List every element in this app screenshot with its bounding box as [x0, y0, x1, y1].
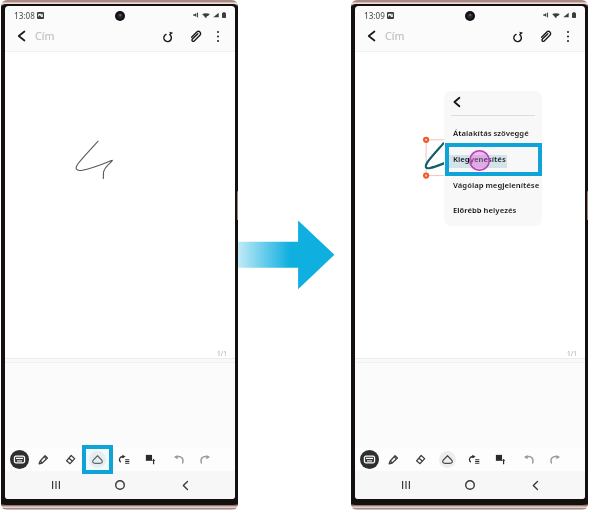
- button[interactable]: More options: [207, 24, 229, 48]
- button[interactable]: Back: [10, 24, 32, 48]
- button[interactable]: Back: [448, 93, 466, 111]
- button[interactable]: History: [157, 24, 179, 48]
- button[interactable]: Eraser: [409, 448, 431, 470]
- button[interactable]: Pen: [382, 448, 404, 470]
- button[interactable]: Selection: [436, 448, 458, 470]
- button[interactable]: Recents: [43, 471, 69, 499]
- button[interactable]: Attach: [184, 24, 206, 48]
- button[interactable]: Insert image: [139, 448, 161, 470]
- button[interactable]: Kiegyenesítés: [444, 148, 542, 170]
- button[interactable]: Back: [360, 24, 382, 48]
- button[interactable]: Előrébb helyezés: [444, 199, 542, 221]
- button[interactable]: Átalakítás szöveggé: [444, 122, 542, 144]
- button[interactable]: Attach: [534, 24, 556, 48]
- button[interactable]: Home: [107, 471, 133, 499]
- button[interactable]: Selection: [86, 448, 108, 470]
- staticText: 1/1: [567, 349, 577, 358]
- staticText: Előrébb helyezés: [453, 205, 517, 215]
- button[interactable]: Redo: [194, 448, 216, 470]
- staticText: 13:08: [14, 10, 35, 21]
- button[interactable]: Keyboard: [358, 448, 380, 470]
- staticText: 13:09: [364, 10, 385, 21]
- button[interactable]: Keyboard: [8, 448, 30, 470]
- staticText: Cím: [385, 29, 405, 43]
- button[interactable]: Pen: [32, 448, 54, 470]
- button[interactable]: Undo: [518, 448, 540, 470]
- button[interactable]: Convert to text: [113, 448, 135, 470]
- button[interactable]: History: [507, 24, 529, 48]
- button[interactable]: Back: [172, 471, 198, 499]
- button[interactable]: Insert image: [489, 448, 511, 470]
- button[interactable]: More options: [557, 24, 579, 48]
- button[interactable]: Back: [522, 471, 548, 499]
- staticText: Cím: [35, 29, 55, 43]
- staticText: Vágólap megjelenítése: [453, 180, 540, 190]
- staticText: 1/1: [217, 349, 227, 358]
- button[interactable]: Undo: [168, 448, 190, 470]
- button[interactable]: Redo: [544, 448, 566, 470]
- button[interactable]: Convert to text: [463, 448, 485, 470]
- staticText: Kiegyenesítés: [453, 154, 506, 164]
- button[interactable]: Recents: [393, 471, 419, 499]
- button[interactable]: Eraser: [59, 448, 81, 470]
- button[interactable]: Vágólap megjelenítése: [444, 174, 542, 196]
- staticText: Átalakítás szöveggé: [453, 128, 529, 138]
- button[interactable]: Home: [457, 471, 483, 499]
